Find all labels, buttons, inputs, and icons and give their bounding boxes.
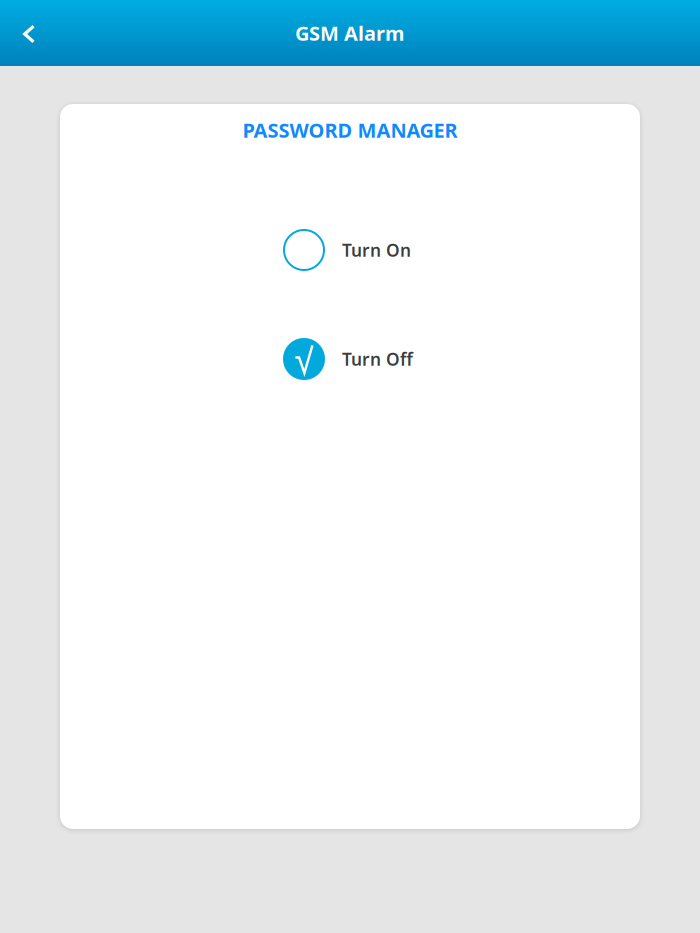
staticText: Turn Off <box>342 347 413 370</box>
staticText: Turn On <box>342 238 411 261</box>
button[interactable]: Turn Off <box>283 338 483 380</box>
staticText: PASSWORD MANAGER <box>242 117 457 143</box>
button[interactable]: Back <box>6 11 50 55</box>
staticText: GSM Alarm <box>295 20 405 46</box>
button[interactable]: Turn On <box>283 229 483 271</box>
